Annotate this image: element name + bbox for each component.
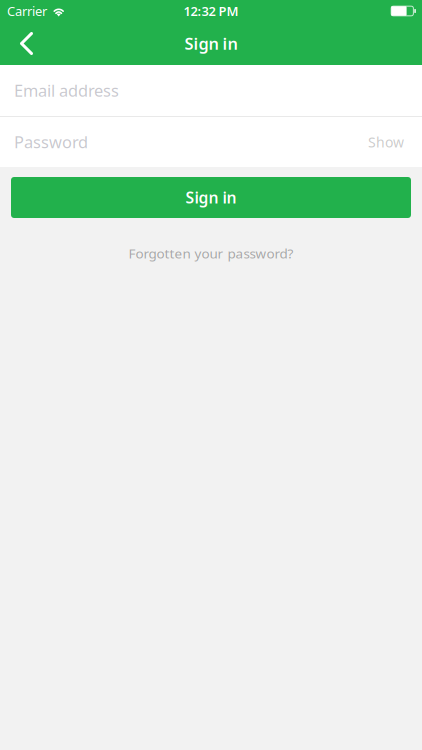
staticText: Password: [14, 131, 88, 153]
staticText: Forgotten your password?: [128, 244, 293, 262]
staticText: 12:32 PM: [183, 2, 238, 20]
staticText: Sign in: [185, 187, 236, 208]
button[interactable]: Email address: [0, 65, 422, 116]
staticText: Show: [368, 132, 404, 152]
button[interactable]: Sign in: [11, 177, 411, 218]
button[interactable]: Show: [354, 117, 422, 167]
staticText: Carrier: [7, 2, 47, 20]
staticText: Sign in: [184, 32, 237, 55]
button[interactable]: Password: [0, 117, 354, 167]
button[interactable]: Forgotten your password?: [116, 240, 305, 266]
staticText: Email address: [14, 79, 119, 102]
button[interactable]: Back: [0, 22, 49, 65]
